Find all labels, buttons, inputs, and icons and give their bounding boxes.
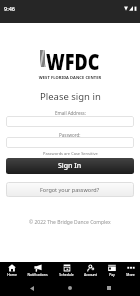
button[interactable]: Back: [25, 281, 39, 295]
button[interactable]: [6, 137, 134, 148]
staticText: Schedule: [59, 272, 74, 277]
staticText: More: [126, 272, 135, 277]
staticText: Password:: [59, 132, 81, 138]
staticText: Home: [7, 272, 17, 277]
button[interactable]: Pay: [103, 262, 121, 279]
button[interactable]: Account: [79, 262, 102, 279]
button[interactable]: [6, 116, 134, 127]
button[interactable]: Forgot your password?: [6, 182, 134, 197]
staticText: © 2022 The Bridge Dance Complex: [29, 219, 111, 226]
staticText: 9:46: [4, 5, 15, 12]
staticText: Account: [84, 272, 97, 277]
button[interactable]: Notifications: [22, 262, 53, 279]
staticText: WEST FLORIDA DANCE CENTER: [0, 75, 140, 80]
staticText: WFDC: [46, 45, 100, 76]
staticText: Email Address:: [55, 110, 86, 116]
button[interactable]: Sign In: [6, 158, 134, 174]
staticText: Notifications: [27, 272, 48, 277]
button[interactable]: Schedule: [54, 262, 79, 279]
button[interactable]: More: [121, 262, 140, 279]
staticText: Pay: [109, 272, 115, 277]
button[interactable]: Recents: [102, 281, 116, 295]
button[interactable]: Home: [63, 281, 77, 295]
staticText: Sign In: [58, 161, 82, 171]
staticText: Please sign in: [40, 90, 101, 103]
staticText: Passwords are Case Sensitive: [43, 151, 98, 156]
button[interactable]: Home: [2, 262, 22, 279]
staticText: Forgot your password?: [40, 186, 100, 193]
